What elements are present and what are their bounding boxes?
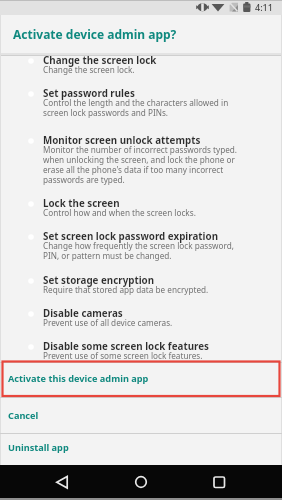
staticText: Change how frequently the screen lock pa… [43,240,234,261]
staticText: Uninstall app [8,441,69,454]
staticText: Disable cameras [43,307,123,320]
staticText: Activate this device admin app [8,372,149,385]
staticText: Monitor the number of incorrect password… [43,144,238,185]
staticText: Monitor screen unlock attempts [43,134,201,147]
staticText: Set screen lock password expiration [43,230,219,243]
staticText: Change the screen lock. [43,64,135,75]
staticText: Disable some screen lock features [43,340,209,353]
staticText: Prevent use of all device cameras. [43,317,173,328]
staticText: 4:11 [255,1,273,13]
staticText: Set storage encryption [43,274,155,287]
staticText: Control the length and the characters al… [43,97,229,118]
staticText: Change the screen lock [43,54,157,67]
staticText: Prevent use of some screen lock features… [43,350,203,361]
staticText: Cancel [8,409,39,422]
staticText: Lock the screen [43,197,120,210]
staticText: Control how and when the screen locks. [43,207,196,218]
staticText: Activate device admin app? [13,26,177,42]
staticText: Require that stored app data be encrypte… [43,284,209,295]
staticText: Set password rules [43,87,135,100]
